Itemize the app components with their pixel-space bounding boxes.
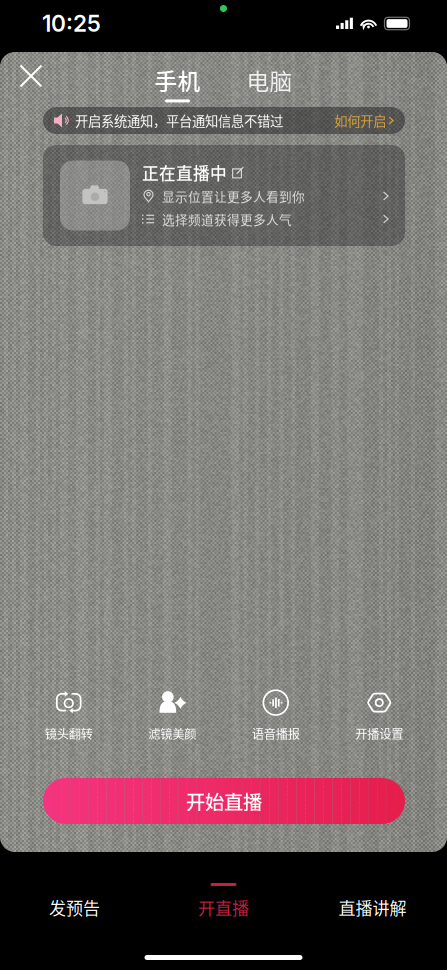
staticText: 镜头翻转 [45, 725, 93, 742]
staticText: 选择频道获得更多人气 [162, 210, 292, 228]
button[interactable]: 手机 [146, 63, 208, 103]
button[interactable]: 发预告 [0, 883, 149, 939]
staticText: 发预告 [49, 895, 100, 920]
staticText: 正在直播中 [142, 160, 227, 184]
button[interactable]: 开播设置 [327, 692, 431, 740]
button[interactable]: 选择频道获得更多人气 [142, 207, 389, 230]
staticText: 开启系统通知，平台通知信息不错过 [75, 111, 283, 130]
button[interactable]: 显示位置让更多人看到你 [142, 184, 389, 207]
button[interactable]: 语音播报 [224, 692, 327, 740]
button[interactable]: Close [11, 56, 51, 96]
staticText: 开直播 [198, 895, 249, 920]
button[interactable]: 直播讲解 [298, 883, 447, 939]
staticText: 语音播报 [252, 725, 300, 742]
staticText: 滤镜美颜 [148, 725, 196, 742]
button[interactable]: 滤镜美颜 [120, 692, 224, 740]
staticText: 显示位置让更多人看到你 [162, 187, 305, 205]
staticText: 手机 [154, 64, 200, 96]
button[interactable]: 开启系统通知，平台通知信息不错过 [43, 107, 405, 134]
staticText: 如何开启 [334, 111, 386, 130]
staticText: 开播设置 [355, 725, 403, 742]
button[interactable]: 开直播 [149, 883, 298, 939]
staticText: 电脑 [246, 64, 292, 96]
button[interactable]: 开始直播 [43, 778, 405, 824]
staticText: 直播讲解 [338, 895, 406, 920]
staticText: 开始直播 [186, 787, 262, 815]
staticText: 10:25 [42, 10, 101, 37]
button[interactable]: 镜头翻转 [17, 692, 120, 740]
button[interactable]: 电脑 [238, 63, 300, 103]
